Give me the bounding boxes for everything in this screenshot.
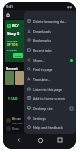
staticText: Show bbox=[12, 127, 19, 131]
staticText: Bookmarks bbox=[33, 38, 52, 43]
staticText: Delete browsing da... bbox=[33, 19, 67, 24]
staticText: Add to home screen bbox=[33, 96, 65, 101]
staticText: Recent bbox=[6, 66, 18, 71]
button[interactable]: SHOP bbox=[13, 53, 23, 58]
staticText: Translate... bbox=[33, 77, 51, 82]
button[interactable]: Help and feedback bbox=[24, 122, 76, 132]
staticText: Recent tabs bbox=[33, 48, 52, 53]
staticText: deal here bbox=[12, 121, 23, 124]
staticText: Settings bbox=[33, 116, 46, 121]
button[interactable]: Home bbox=[35, 135, 45, 145]
button[interactable]: Find in page bbox=[24, 64, 76, 74]
staticText: Free ship bbox=[7, 39, 18, 42]
staticText: Listen to this page bbox=[33, 87, 63, 92]
button[interactable]: Desktop site bbox=[24, 103, 76, 113]
staticText: Desktop site bbox=[33, 106, 53, 111]
button[interactable]: Recent tabs bbox=[24, 45, 76, 55]
staticText: UP TO 5 bbox=[7, 43, 18, 47]
staticText: b bbox=[8, 24, 10, 28]
button[interactable]: Recents bbox=[55, 135, 65, 145]
button[interactable]: Settings bbox=[24, 113, 76, 123]
staticText: Stay S bbox=[7, 31, 20, 37]
button[interactable]: Share... bbox=[24, 55, 76, 65]
staticText: Downloads bbox=[33, 29, 51, 34]
staticText: We can bbox=[12, 117, 21, 121]
button[interactable]: Back bbox=[14, 135, 24, 145]
staticText: Share... bbox=[33, 58, 45, 63]
staticText: SHOP bbox=[15, 54, 22, 57]
staticText: Help and feedback bbox=[33, 125, 63, 130]
staticText: BC/ bbox=[12, 23, 19, 28]
button[interactable]: Home bbox=[5, 12, 11, 18]
button[interactable]: Translate... bbox=[24, 74, 76, 84]
button[interactable]: Listen to this page bbox=[24, 84, 76, 94]
staticText: Find in page bbox=[33, 67, 53, 72]
staticText: Y CASI bbox=[8, 97, 18, 101]
button[interactable]: Bookmarks bbox=[24, 35, 76, 45]
staticText: in Clarks bbox=[7, 48, 17, 51]
staticText: ●● bbox=[67, 5, 73, 8]
button[interactable]: Add to home screen bbox=[24, 93, 76, 103]
button[interactable]: Delete browsing da... bbox=[24, 16, 76, 26]
staticText: 9:41 bbox=[6, 4, 13, 9]
button[interactable]: Downloads bbox=[24, 26, 76, 36]
